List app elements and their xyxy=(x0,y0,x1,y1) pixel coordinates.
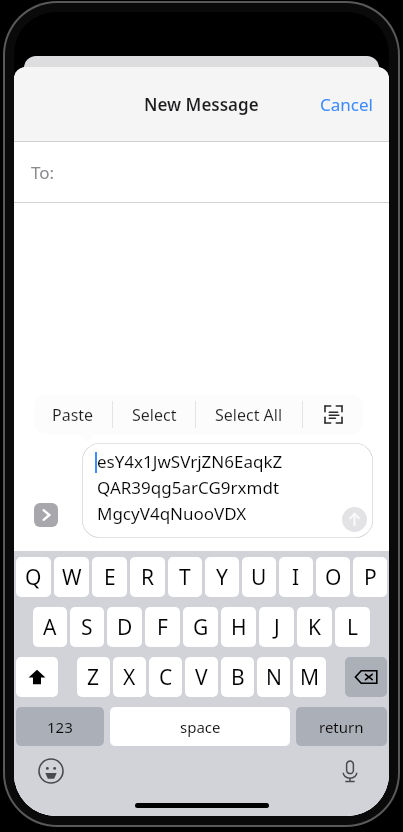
button[interactable]: D xyxy=(107,607,142,647)
button[interactable]: Emoji xyxy=(38,758,64,784)
button[interactable]: N xyxy=(257,657,290,697)
button[interactable]: 123 xyxy=(16,707,104,746)
button[interactable]: return xyxy=(296,707,387,746)
staticText: R xyxy=(141,563,155,592)
staticText: Select All xyxy=(215,404,283,426)
staticText: Select xyxy=(132,404,177,426)
staticText: D xyxy=(117,613,133,642)
button[interactable]: Q xyxy=(16,557,51,597)
staticText: A xyxy=(43,613,57,642)
button[interactable]: V xyxy=(185,657,218,697)
staticText: H xyxy=(231,613,247,642)
staticText: V xyxy=(195,663,208,692)
button[interactable]: T xyxy=(168,557,202,597)
button[interactable]: Scan text xyxy=(303,395,363,434)
button[interactable]: P xyxy=(353,557,387,597)
button[interactable]: Select All xyxy=(196,395,302,434)
button[interactable]: J xyxy=(259,607,294,647)
button[interactable]: Y xyxy=(205,557,239,597)
button[interactable]: Backspace xyxy=(345,657,387,697)
staticText: C xyxy=(159,663,173,692)
staticText: K xyxy=(308,613,321,642)
staticText: J xyxy=(274,613,280,642)
staticText: E xyxy=(104,563,116,592)
staticText: QAR39qg5arCG9rxmdt xyxy=(97,476,280,499)
staticText: G xyxy=(193,613,209,642)
staticText: return xyxy=(319,717,364,737)
button[interactable]: W xyxy=(54,557,89,597)
button[interactable]: K xyxy=(297,607,332,647)
staticText: Y xyxy=(216,563,228,592)
staticText: Z xyxy=(87,663,100,692)
staticText: 123 xyxy=(47,717,73,737)
staticText: Paste xyxy=(52,404,94,426)
staticText: W xyxy=(62,563,82,592)
staticText: MgcyV4qNuooVDX xyxy=(97,502,247,525)
button[interactable]: Dictation xyxy=(337,758,363,784)
button[interactable]: To: xyxy=(14,142,389,202)
button[interactable]: S xyxy=(70,607,104,647)
button[interactable]: A xyxy=(33,607,67,647)
staticText: P xyxy=(364,563,377,592)
staticText: F xyxy=(157,613,168,642)
staticText: Cancel xyxy=(320,93,373,116)
button[interactable]: Shift xyxy=(16,657,58,697)
button[interactable]: M xyxy=(293,657,326,697)
button[interactable]: L xyxy=(335,607,370,647)
staticText: B xyxy=(231,663,245,692)
button[interactable]: More apps xyxy=(34,503,58,527)
button[interactable]: Send xyxy=(342,507,367,532)
staticText: esY4x1JwSVrjZN6EaqkZ xyxy=(97,450,283,473)
button[interactable]: X xyxy=(113,657,146,697)
staticText: New Message xyxy=(144,93,259,116)
button[interactable]: E xyxy=(92,557,127,597)
button[interactable]: esY4x1JwSVrjZN6EaqkZ xyxy=(82,443,373,538)
staticText: T xyxy=(179,563,191,592)
staticText: N xyxy=(266,663,282,692)
button[interactable]: B xyxy=(221,657,254,697)
staticText: O xyxy=(325,563,342,592)
staticText: I xyxy=(292,563,300,592)
button[interactable]: Select xyxy=(113,395,195,434)
staticText: X xyxy=(123,663,136,692)
button[interactable]: U xyxy=(242,557,276,597)
staticText: L xyxy=(347,613,359,642)
staticText: To: xyxy=(31,161,55,184)
button[interactable]: I xyxy=(279,557,313,597)
button[interactable]: R xyxy=(130,557,165,597)
button[interactable]: H xyxy=(221,607,256,647)
button[interactable]: O xyxy=(316,557,350,597)
staticText: U xyxy=(251,563,267,592)
button[interactable]: Cancel xyxy=(304,83,389,126)
button[interactable]: space xyxy=(110,707,290,746)
staticText: Q xyxy=(25,563,42,592)
button[interactable]: C xyxy=(149,657,182,697)
staticText: M xyxy=(300,663,320,692)
button[interactable]: F xyxy=(145,607,180,647)
staticText: space xyxy=(180,717,221,737)
button[interactable]: Z xyxy=(77,657,110,697)
staticText: S xyxy=(81,613,93,642)
button[interactable]: Paste xyxy=(34,395,112,434)
button[interactable]: G xyxy=(183,607,218,647)
